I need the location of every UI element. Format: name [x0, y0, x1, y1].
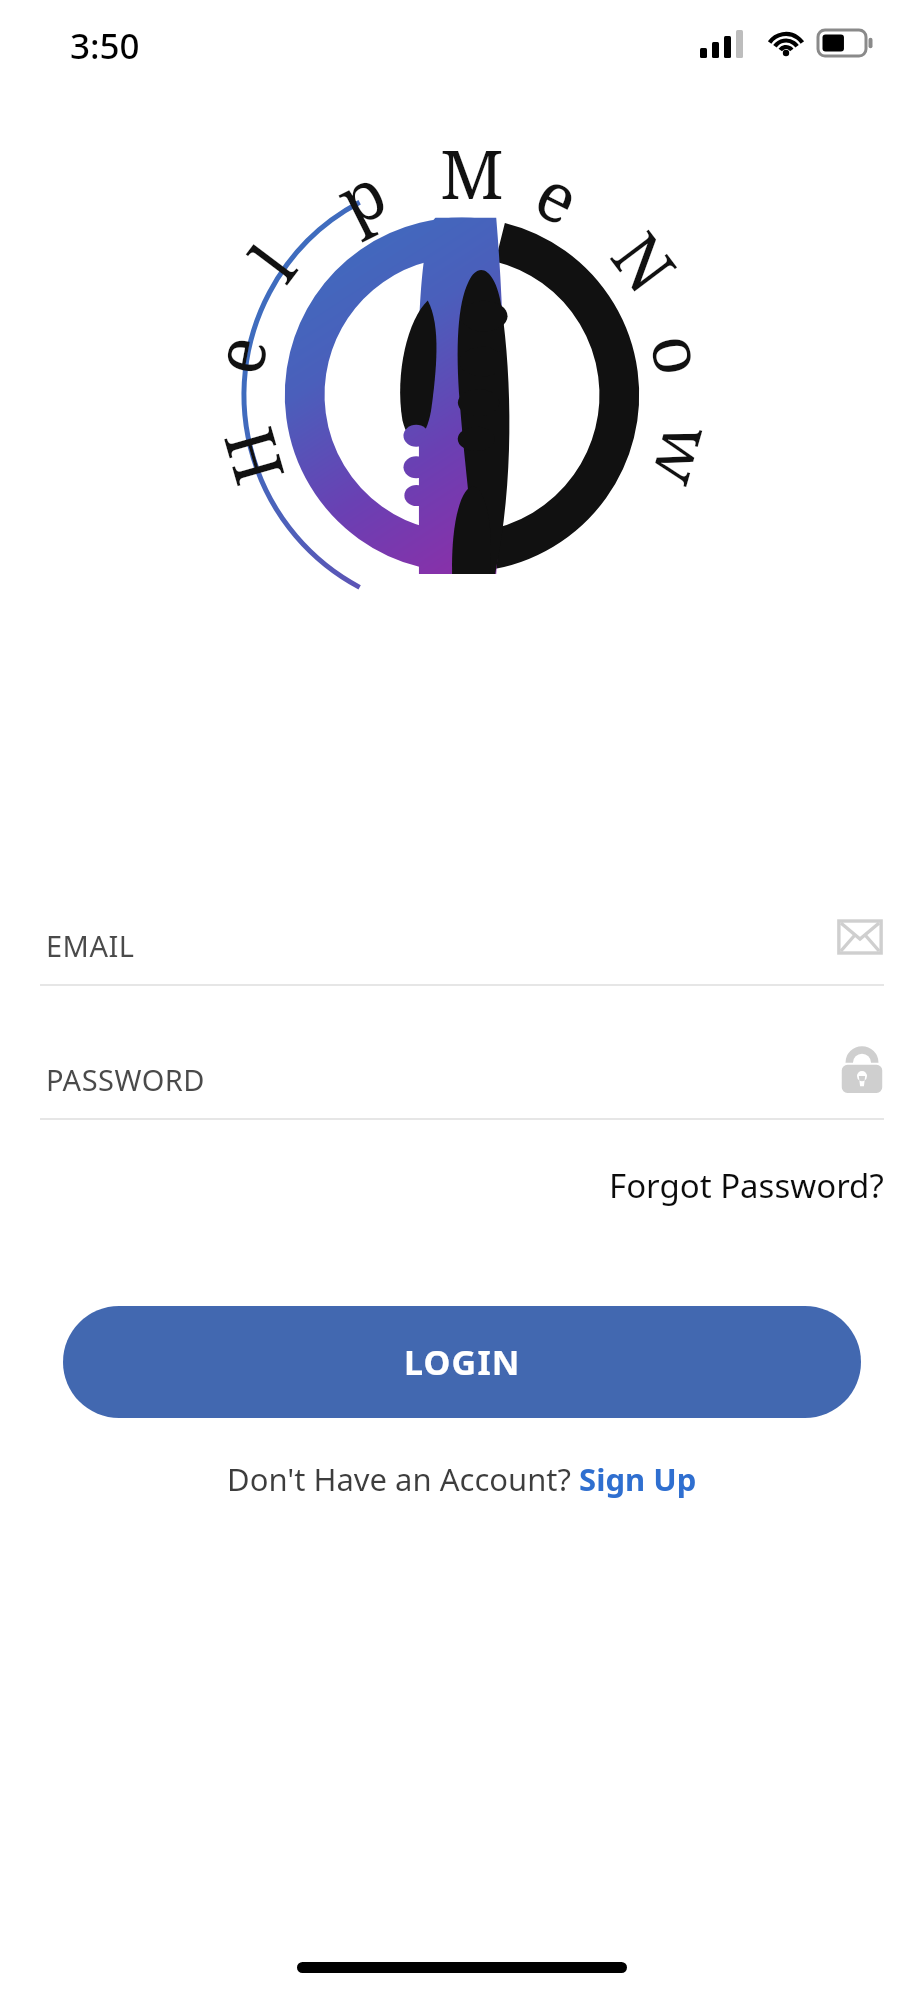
staticText: LOGIN — [404, 1339, 521, 1385]
staticText: M — [440, 126, 504, 219]
staticText: EMAIL — [46, 926, 135, 965]
staticText: l — [228, 225, 316, 298]
staticText: PASSWORD — [46, 1060, 206, 1099]
staticText: H — [200, 418, 304, 495]
button[interactable]: LOGIN — [63, 1306, 861, 1418]
staticText: Don't Have an Account? Sign Up — [227, 1458, 697, 1500]
button[interactable]: PASSWORD — [40, 1034, 884, 1120]
staticText: w — [632, 415, 737, 498]
staticText: e — [189, 328, 288, 381]
staticText: N — [592, 213, 698, 310]
staticText: o — [631, 326, 729, 383]
staticText: p — [321, 144, 401, 246]
staticText: e — [521, 146, 596, 245]
staticText: 3:50 — [70, 22, 140, 70]
button[interactable]: EMAIL — [40, 900, 884, 986]
staticText: Forgot Password? — [609, 1163, 884, 1208]
button[interactable]: Forgot Password? — [560, 1148, 884, 1222]
button[interactable]: Don't Have an Account? Sign Up — [219, 1452, 705, 1506]
